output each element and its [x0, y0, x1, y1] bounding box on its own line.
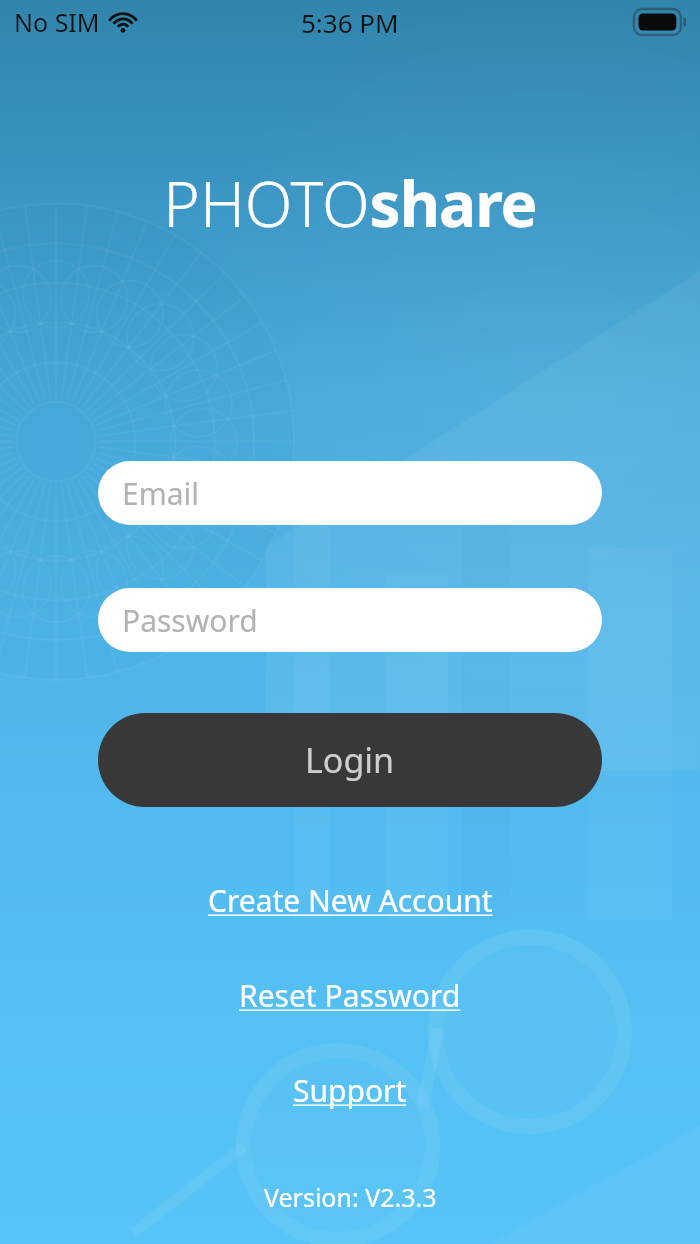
staticText: Support	[293, 1070, 407, 1111]
button[interactable]: Password	[98, 588, 602, 652]
staticText: Password	[122, 600, 258, 641]
button[interactable]: Create New Account	[196, 876, 505, 925]
button[interactable]: Email	[98, 461, 602, 525]
button[interactable]: Login	[98, 713, 602, 807]
staticText: Email	[122, 473, 200, 514]
staticText: PHOTOshare	[163, 161, 537, 245]
button[interactable]: Reset Password	[227, 971, 473, 1020]
staticText: Version: V2.3.3	[264, 1180, 437, 1214]
staticText: 5:36 PM	[301, 5, 399, 40]
staticText: Reset Password	[239, 975, 461, 1016]
button[interactable]: Support	[281, 1066, 419, 1115]
staticText: Login	[305, 737, 395, 783]
staticText: Create New Account	[208, 880, 493, 921]
staticText: No SIM	[14, 5, 100, 39]
